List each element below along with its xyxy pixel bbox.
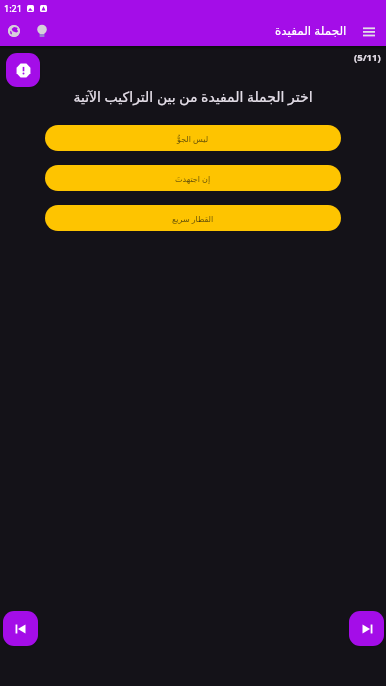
- button[interactable]: Menu: [357, 19, 381, 43]
- staticText: اختر الجملة المفيدة من بين التراكيب الآت…: [0, 87, 386, 106]
- staticText: 1:21: [4, 2, 22, 14]
- button[interactable]: Hint: [30, 19, 54, 43]
- button[interactable]: إن اجتهدتَ: [45, 165, 341, 191]
- button[interactable]: Next: [349, 611, 384, 646]
- staticText: الجملة المفيدة: [275, 22, 347, 38]
- staticText: (5/11): [354, 51, 381, 64]
- button[interactable]: Previous: [3, 611, 38, 646]
- button[interactable]: ليس الجوُّ: [45, 125, 341, 151]
- button[interactable]: القطار سريع: [45, 205, 341, 231]
- staticText: ليس الجوُّ: [177, 133, 209, 144]
- staticText: إن اجتهدتَ: [175, 173, 211, 184]
- staticText: القطار سريع: [172, 213, 214, 224]
- button[interactable]: Report a problem: [6, 53, 40, 87]
- button[interactable]: Language: [2, 19, 26, 43]
